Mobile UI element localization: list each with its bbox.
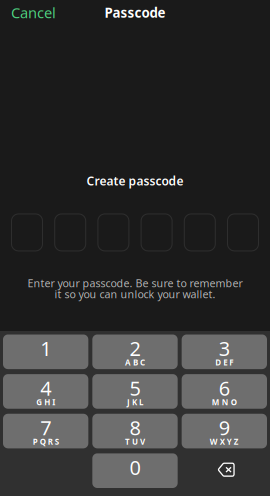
button[interactable]: 8	[92, 414, 178, 448]
staticText: J K L	[127, 397, 143, 407]
staticText: 6	[219, 375, 230, 401]
staticText: D E F	[215, 357, 233, 368]
button[interactable]: 9	[182, 414, 267, 448]
staticText: T U V	[125, 436, 145, 447]
staticText: 3	[219, 335, 230, 362]
staticText: A B C	[125, 357, 145, 368]
staticText: 1	[40, 335, 51, 362]
staticText: 2	[129, 335, 140, 362]
staticText: Create passcode	[86, 173, 183, 189]
button[interactable]: 4	[3, 374, 88, 409]
button[interactable]: 2	[92, 334, 178, 369]
button[interactable]: Delete	[182, 453, 267, 488]
staticText: Cancel	[11, 3, 56, 22]
staticText: W X Y Z	[210, 436, 239, 447]
staticText: P Q R S	[33, 436, 59, 447]
staticText: G H I	[36, 397, 55, 407]
staticText: 0	[129, 454, 140, 480]
button[interactable]: 7	[3, 414, 88, 448]
button[interactable]: 3	[182, 334, 267, 369]
staticText: 4	[40, 375, 51, 401]
staticText: Passcode	[104, 4, 165, 21]
staticText: it so you can unlock your wallet.	[54, 287, 215, 301]
button[interactable]: Cancel	[0, 0, 67, 27]
staticText: 5	[129, 375, 140, 401]
button[interactable]: 0	[92, 453, 178, 488]
staticText: 9	[219, 414, 230, 441]
button[interactable]: 5	[92, 374, 178, 409]
staticText: M N O	[212, 397, 237, 407]
button[interactable]: 6	[182, 374, 267, 409]
staticText: 7	[40, 414, 51, 441]
staticText: 8	[129, 414, 140, 441]
button[interactable]: 1	[3, 334, 88, 369]
staticText: Enter your passcode. Be sure to remember	[27, 276, 242, 290]
